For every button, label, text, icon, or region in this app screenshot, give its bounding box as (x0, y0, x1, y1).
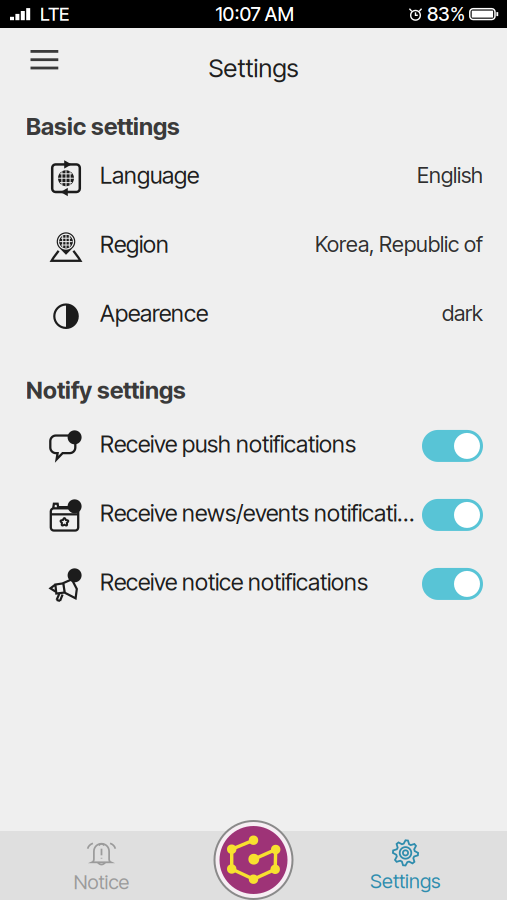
button[interactable]: Region (0, 210, 507, 279)
button[interactable]: Apearence (0, 279, 507, 348)
staticText: Region (100, 230, 169, 258)
button[interactable]: Receive notice notifications (0, 547, 507, 616)
staticText: Receive notice notifications (100, 568, 368, 596)
button[interactable]: Receive news/events notificati... (0, 478, 507, 547)
staticText: 83% (427, 2, 465, 26)
staticText: Receive news/events notificati... (100, 499, 415, 527)
staticText: Basic settings (26, 112, 180, 141)
staticText: Settings (370, 869, 441, 893)
button[interactable]: Receive push notifications (0, 409, 507, 478)
staticText: dark (442, 300, 483, 326)
button[interactable]: Menu (21, 38, 67, 82)
staticText: LTE (40, 3, 69, 25)
button[interactable]: Settings (304, 831, 507, 900)
button[interactable]: Home (203, 831, 304, 900)
button[interactable]: Language (0, 141, 507, 210)
button[interactable]: Home (213, 820, 293, 900)
staticText: Settings (208, 53, 298, 83)
staticText: Korea, Republic of (315, 231, 483, 257)
staticText: Language (100, 161, 199, 189)
button[interactable]: Notice (0, 831, 203, 900)
staticText: 10:07 AM (215, 2, 294, 26)
staticText: Notice (73, 870, 129, 894)
staticText: English (417, 162, 483, 188)
staticText: Receive push notifications (100, 430, 356, 458)
staticText: Notify settings (26, 376, 186, 404)
staticText: Apearence (100, 299, 208, 327)
